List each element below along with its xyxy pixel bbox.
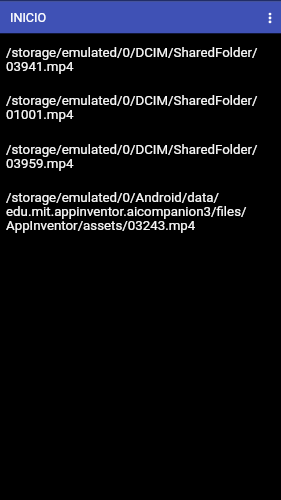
button[interactable]: More options xyxy=(258,6,281,30)
button[interactable]: /storage/emulated/0/DCIM/SharedFolder/03… xyxy=(0,143,281,171)
staticText: INICIO xyxy=(10,10,47,25)
button[interactable]: /storage/emulated/0/DCIM/SharedFolder/01… xyxy=(0,94,281,122)
button[interactable]: /storage/emulated/0/Android/data/edu.mit… xyxy=(0,191,281,233)
button[interactable]: /storage/emulated/0/DCIM/SharedFolder/03… xyxy=(0,46,281,74)
